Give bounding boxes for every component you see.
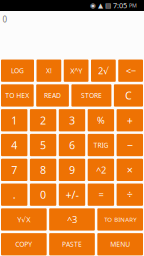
staticText: X! bbox=[46, 66, 52, 75]
button[interactable]: 2 bbox=[30, 109, 56, 131]
button[interactable]: MENU bbox=[97, 233, 143, 255]
button[interactable]: PASTE bbox=[49, 233, 95, 255]
staticText: +/- bbox=[65, 187, 78, 202]
button[interactable]: C bbox=[114, 84, 143, 107]
button[interactable]: 3 bbox=[59, 109, 85, 131]
button[interactable]: % bbox=[88, 109, 114, 131]
staticText: % bbox=[97, 114, 105, 127]
staticText: LOG bbox=[11, 66, 24, 75]
button[interactable]: TO BINARY bbox=[97, 208, 143, 231]
button[interactable]: − bbox=[117, 134, 143, 156]
staticText: 0 bbox=[40, 187, 46, 202]
button[interactable]: ^3 bbox=[49, 208, 95, 231]
staticText: Y√X bbox=[17, 214, 30, 224]
button[interactable]: 9 bbox=[59, 159, 85, 181]
button[interactable]: + bbox=[117, 109, 143, 131]
button[interactable]: . bbox=[1, 183, 27, 206]
staticText: ◉ bbox=[90, 2, 96, 9]
staticText: TO HEX bbox=[5, 91, 29, 100]
button[interactable]: 4 bbox=[1, 134, 27, 156]
staticText: 4 bbox=[11, 138, 17, 152]
staticText: C bbox=[125, 88, 132, 103]
button[interactable]: ÷ bbox=[117, 183, 143, 206]
staticText: + bbox=[127, 113, 133, 127]
staticText: 7:05 bbox=[113, 0, 127, 10]
button[interactable]: READ bbox=[36, 84, 69, 107]
staticText: TRIG bbox=[93, 140, 108, 150]
staticText: MENU bbox=[110, 240, 130, 249]
staticText: − bbox=[127, 138, 133, 152]
staticText: PM bbox=[129, 2, 137, 9]
staticText: 7 bbox=[11, 163, 17, 177]
button[interactable]: 2√ bbox=[91, 59, 116, 82]
button[interactable]: <− bbox=[118, 59, 143, 82]
button[interactable]: TRIG bbox=[88, 134, 114, 156]
button[interactable]: X! bbox=[36, 59, 61, 82]
button[interactable]: = bbox=[88, 183, 114, 206]
button[interactable]: COPY bbox=[1, 233, 47, 255]
button[interactable]: STORE bbox=[71, 84, 111, 107]
staticText: TO BINARY bbox=[104, 215, 136, 224]
staticText: 9 bbox=[69, 163, 75, 177]
button[interactable]: 0 bbox=[30, 183, 56, 206]
button[interactable]: +/- bbox=[59, 183, 85, 206]
button[interactable]: Y√X bbox=[1, 208, 47, 231]
button[interactable]: 5 bbox=[30, 134, 56, 156]
button[interactable]: 1 bbox=[1, 109, 27, 131]
staticText: = bbox=[98, 188, 103, 201]
button[interactable]: × bbox=[117, 159, 143, 181]
button[interactable]: X^Y bbox=[64, 59, 89, 82]
staticText: READ bbox=[44, 91, 61, 100]
staticText: ▲ bbox=[98, 2, 103, 9]
staticText: ÷ bbox=[127, 187, 133, 202]
staticText: 2 bbox=[40, 113, 46, 127]
button[interactable]: TO HEX bbox=[1, 84, 34, 107]
staticText: 8 bbox=[40, 163, 46, 177]
staticText: × bbox=[127, 163, 133, 177]
staticText: 5 bbox=[40, 138, 46, 152]
staticText: 6 bbox=[69, 138, 75, 152]
staticText: 3 bbox=[69, 113, 75, 127]
staticText: 1 bbox=[11, 113, 17, 127]
staticText: PASTE bbox=[62, 240, 82, 249]
staticText: 0 bbox=[2, 14, 7, 25]
staticText: <− bbox=[126, 64, 136, 77]
staticText: COPY bbox=[15, 240, 32, 249]
button[interactable]: ^2 bbox=[88, 159, 114, 181]
staticText: STORE bbox=[81, 91, 102, 100]
button[interactable]: 8 bbox=[30, 159, 56, 181]
staticText: ^3 bbox=[67, 213, 77, 226]
staticText: ^2 bbox=[96, 163, 106, 176]
button[interactable]: 7 bbox=[1, 159, 27, 181]
button[interactable]: LOG bbox=[1, 59, 34, 82]
staticText: X^Y bbox=[70, 66, 82, 76]
staticText: ▤ bbox=[105, 2, 111, 9]
button[interactable]: 6 bbox=[59, 134, 85, 156]
staticText: 2√ bbox=[98, 64, 109, 77]
staticText: . bbox=[13, 187, 16, 202]
